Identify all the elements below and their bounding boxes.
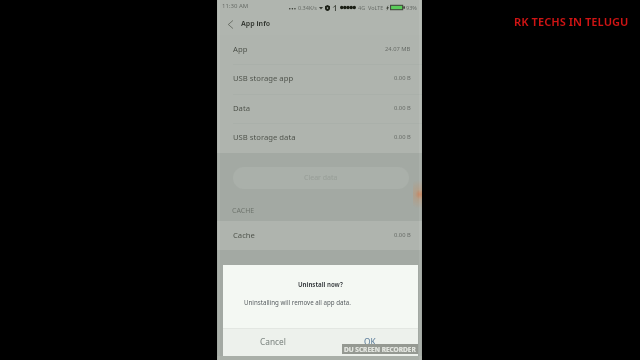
- staticText: USB storage data: [233, 132, 296, 142]
- staticText: 0.00 B: [394, 231, 411, 239]
- staticText: 11:30 AM: [222, 2, 249, 10]
- staticText: Cache: [233, 230, 255, 240]
- staticText: VoLTE: [368, 4, 384, 11]
- staticText: App info: [241, 19, 271, 29]
- staticText: 24.07 MB: [385, 45, 411, 53]
- staticText: USB storage app: [233, 73, 294, 83]
- staticText: 93%: [406, 4, 417, 11]
- staticText: App: [233, 44, 248, 54]
- button[interactable]: Data: [217, 94, 422, 123]
- button[interactable]: App: [217, 35, 422, 64]
- button[interactable]: Cancel: [253, 329, 293, 353]
- staticText: 0.34K/s: [298, 4, 317, 11]
- staticText: Clear data: [304, 173, 338, 183]
- staticText: Uninstalling will remove all app data.: [244, 298, 351, 306]
- staticText: DU SCREEN RECORDER: [344, 345, 416, 354]
- staticText: Data: [233, 103, 251, 113]
- staticText: CACHE: [232, 206, 255, 216]
- staticText: 0.00 B: [394, 104, 411, 112]
- button[interactable]: Back: [222, 16, 239, 33]
- staticText: Cancel: [260, 336, 286, 347]
- button[interactable]: OK: [354, 329, 386, 353]
- staticText: 0.00 B: [394, 74, 411, 82]
- button[interactable]: USB storage data: [217, 123, 422, 152]
- staticText: RK TECHS IN TELUGU: [514, 14, 629, 29]
- staticText: Uninstall now?: [298, 280, 343, 288]
- staticText: 0.00 B: [394, 133, 411, 141]
- button[interactable]: Cache: [217, 221, 422, 250]
- staticText: OK: [364, 336, 376, 347]
- button[interactable]: USB storage app: [217, 64, 422, 93]
- staticText: 4G: [358, 4, 366, 11]
